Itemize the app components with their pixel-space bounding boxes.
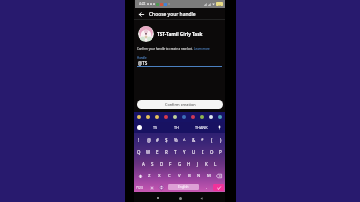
button[interactable]: ?123 [135, 182, 144, 193]
staticText: G [178, 161, 182, 167]
button[interactable]: Home [175, 193, 185, 202]
staticText: P [219, 149, 222, 155]
staticText: % [174, 137, 178, 143]
button[interactable]: Google Assistant [137, 125, 142, 130]
button[interactable]: Emoji [145, 114, 151, 120]
staticText: TH [174, 125, 179, 130]
button[interactable]: V [174, 170, 184, 182]
staticText: V [178, 173, 181, 179]
button[interactable]: N [194, 170, 204, 182]
staticText: Y [183, 149, 186, 155]
button[interactable]: T [171, 146, 180, 158]
button[interactable]: % [171, 134, 180, 146]
button[interactable]: . [204, 182, 210, 193]
staticText: M [207, 173, 211, 179]
button[interactable]: & [189, 134, 198, 146]
button[interactable]: ! [134, 134, 144, 146]
button[interactable]: S [148, 158, 157, 170]
button[interactable]: Z [145, 170, 154, 182]
button[interactable]: # [153, 134, 162, 146]
button[interactable]: Emoji [208, 114, 214, 120]
button[interactable]: * [198, 134, 207, 146]
button[interactable]: U [189, 146, 198, 158]
button[interactable]: Emoji [199, 114, 205, 120]
staticText: Q [137, 149, 141, 155]
button[interactable]: X [154, 170, 164, 182]
button[interactable]: O [207, 146, 216, 158]
staticText: # [156, 137, 159, 143]
button[interactable]: Emoji [154, 114, 160, 120]
button[interactable]: Recents [153, 193, 163, 202]
button[interactable]: ^ [180, 134, 189, 146]
button[interactable]: @ [144, 134, 153, 146]
button[interactable]: Emoji [190, 114, 196, 120]
staticText: @TS [138, 60, 148, 66]
button[interactable]: L [211, 158, 220, 170]
staticText: . [206, 185, 208, 190]
staticText: @ [147, 137, 151, 143]
button[interactable]: Emoji [181, 114, 187, 120]
button[interactable]: K [202, 158, 211, 170]
staticText: L [214, 161, 217, 167]
button[interactable]: Back [196, 193, 206, 202]
button[interactable]: Enter [213, 184, 224, 191]
staticText: ! [138, 137, 140, 143]
staticText: ?123 [136, 186, 143, 190]
button[interactable]: G [175, 158, 184, 170]
button[interactable]: Backspace [214, 170, 224, 182]
staticText: A [142, 161, 145, 167]
button[interactable]: ) [216, 134, 225, 146]
button[interactable]: $ [162, 134, 171, 146]
button[interactable]: W [144, 146, 153, 158]
staticText: D [160, 161, 164, 167]
button[interactable]: Emoji [136, 114, 142, 120]
staticText: B [188, 173, 191, 179]
button[interactable]: Change language [157, 182, 165, 193]
staticText: U [192, 149, 196, 155]
staticText: * [201, 137, 204, 143]
button[interactable]: E [153, 146, 162, 158]
staticText: J [197, 161, 199, 167]
staticText: Learn more [194, 47, 210, 51]
staticText: F [169, 161, 172, 167]
button[interactable]: Shift [135, 170, 145, 182]
staticText: ( [211, 137, 213, 143]
button[interactable]: F [166, 158, 175, 170]
button[interactable]: Q [134, 146, 144, 158]
button[interactable]: A [139, 158, 148, 170]
button[interactable]: B [184, 170, 194, 182]
button[interactable]: ( [207, 134, 216, 146]
button[interactable]: M [204, 170, 214, 182]
staticText: ^ [183, 137, 186, 143]
staticText: Choose your handle [149, 11, 196, 18]
staticText: C [168, 173, 171, 179]
staticText: O [210, 149, 214, 155]
staticText: & [192, 137, 196, 143]
staticText: Confirm your handle to create a new bot. [137, 47, 193, 51]
button[interactable]: Emoji keyboard [148, 182, 156, 193]
staticText: 78 [218, 3, 221, 6]
staticText: W [146, 149, 151, 155]
button[interactable]: P [216, 146, 225, 158]
button[interactable]: Emoji [217, 114, 223, 120]
button[interactable]: I [198, 146, 207, 158]
staticText: TST-Tamil Girly Task [157, 31, 203, 37]
button[interactable]: Back [137, 10, 146, 19]
button[interactable]: C [164, 170, 174, 182]
staticText: I [202, 149, 204, 155]
staticText: Handle [137, 56, 147, 60]
button[interactable]: H [184, 158, 193, 170]
button[interactable]: English [168, 184, 199, 190]
staticText: Z [148, 173, 151, 179]
staticText: Confirm creation [165, 102, 196, 107]
button[interactable]: R [162, 146, 171, 158]
button[interactable]: J [193, 158, 202, 170]
staticText: T [174, 149, 177, 155]
button[interactable]: Emoji [163, 114, 169, 120]
staticText: S [151, 161, 154, 167]
staticText: N [197, 173, 201, 179]
button[interactable]: Confirm creation [137, 100, 223, 109]
button[interactable]: Emoji [172, 114, 178, 120]
button[interactable]: D [157, 158, 166, 170]
button[interactable]: Y [180, 146, 189, 158]
